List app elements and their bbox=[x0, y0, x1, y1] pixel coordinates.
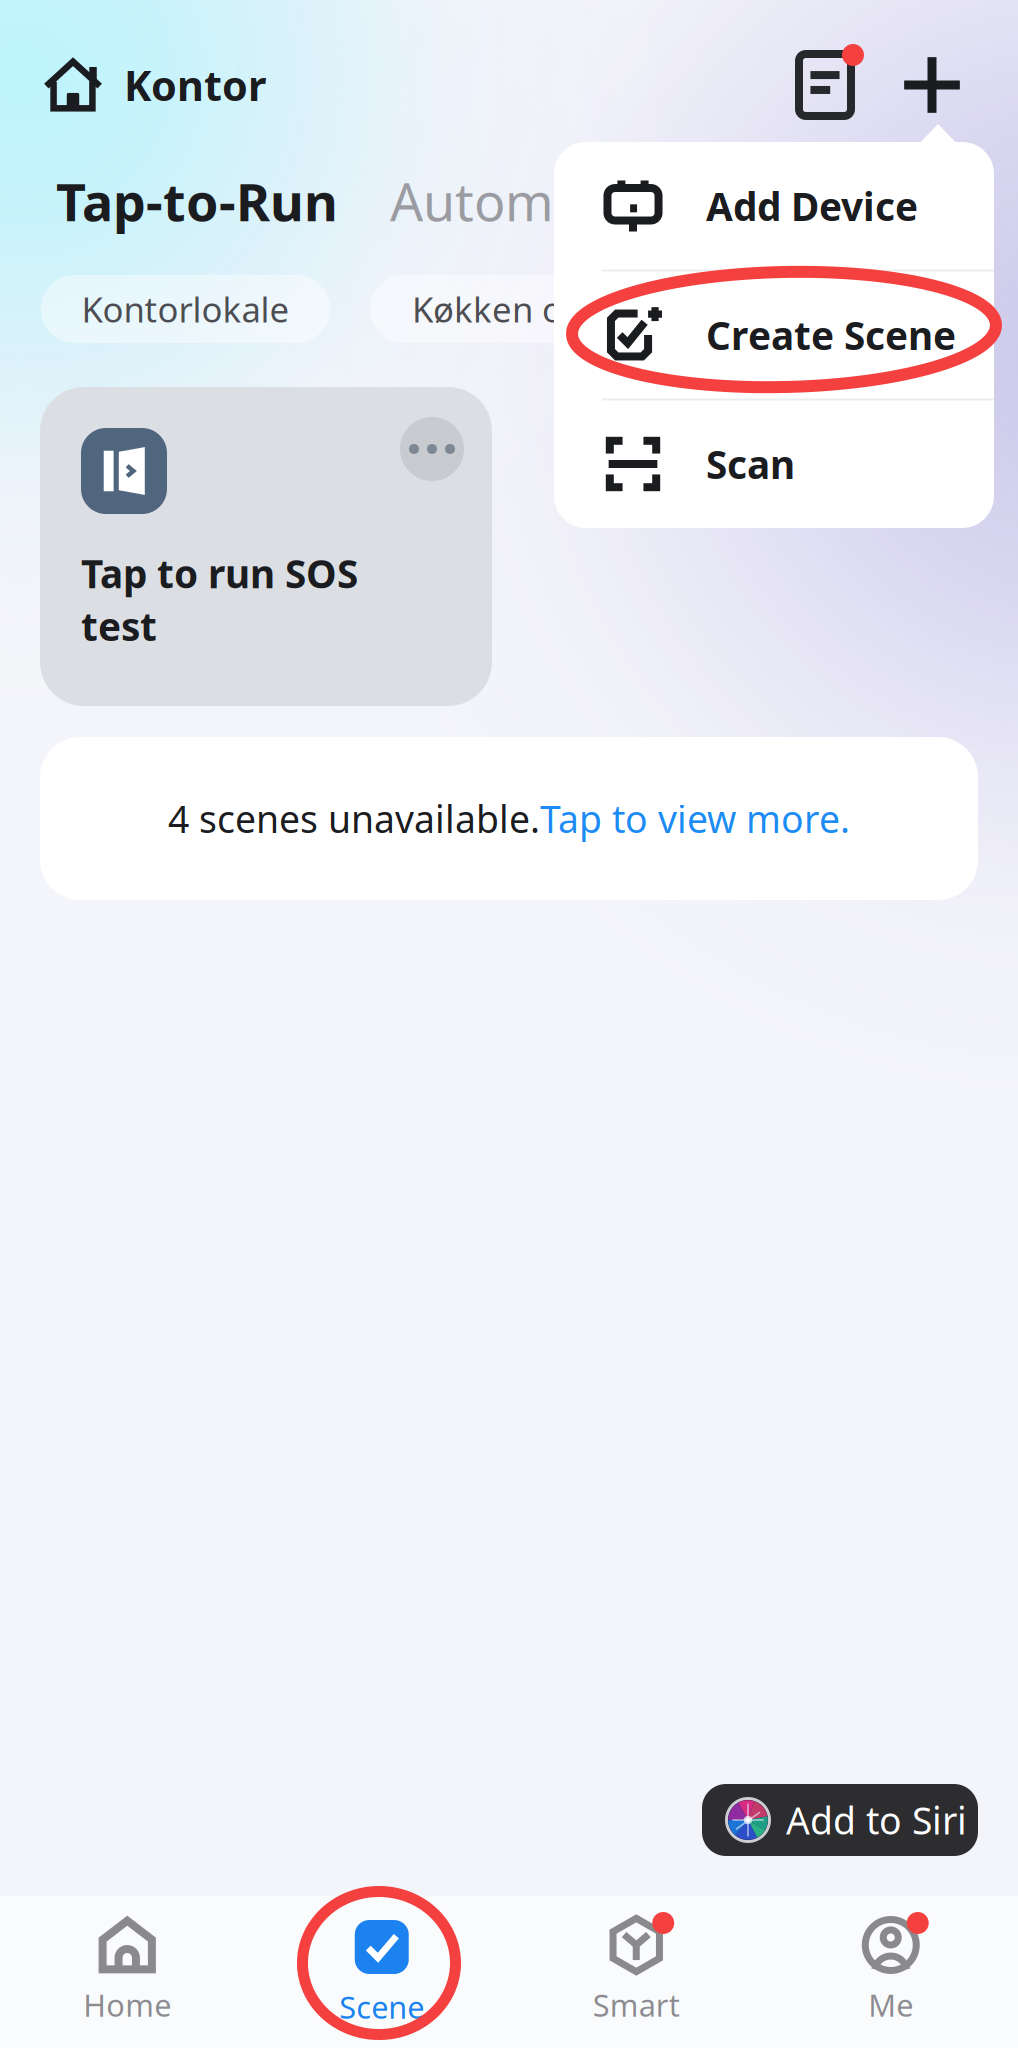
staticText: Home bbox=[83, 1984, 171, 2026]
button[interactable]: Me bbox=[763, 1896, 1018, 2048]
button[interactable]: Home bbox=[0, 1896, 254, 2048]
staticText: Kontor bbox=[124, 57, 266, 113]
button[interactable]: Scan bbox=[554, 400, 994, 527]
button[interactable]: Add to Siri bbox=[702, 1784, 978, 1856]
button[interactable]: Tap-to-Run bbox=[56, 170, 338, 232]
staticText: Tap-to-Run bbox=[56, 166, 338, 236]
button[interactable]: Køkken og alrum bbox=[370, 275, 730, 343]
staticText: 4 scenes unavailable. bbox=[168, 793, 540, 844]
staticText: Smart bbox=[593, 1984, 680, 2026]
button[interactable]: Smart bbox=[509, 1896, 763, 2048]
staticText: Scan bbox=[706, 438, 795, 490]
staticText: Scene bbox=[339, 1986, 424, 2028]
button[interactable]: Notifications bbox=[783, 45, 867, 125]
staticText: Me bbox=[868, 1984, 913, 2026]
staticText: Add to Siri bbox=[786, 1795, 967, 1845]
button[interactable]: Kontor bbox=[44, 52, 266, 118]
button[interactable]: Tap to run SOS test bbox=[40, 387, 492, 706]
button[interactable]: Automation bbox=[390, 170, 678, 232]
button[interactable]: Kontorlokale bbox=[41, 275, 330, 343]
staticText: Tap to run SOS test bbox=[81, 547, 358, 652]
staticText: Køkken og alrum bbox=[412, 285, 688, 333]
staticText: Automation bbox=[390, 166, 678, 236]
staticText: Create Scene bbox=[706, 309, 956, 361]
button[interactable]: Add device or scene bbox=[890, 45, 974, 125]
button[interactable]: Create Scene bbox=[554, 271, 994, 398]
staticText: Kontorlokale bbox=[81, 285, 289, 333]
staticText: Add Device bbox=[706, 180, 918, 232]
button[interactable]: Add Device bbox=[554, 142, 994, 269]
button[interactable]: 4 scenes unavailable. bbox=[40, 737, 978, 900]
button[interactable]: Scene bbox=[254, 1896, 509, 2048]
staticText: Tap to view more. bbox=[540, 793, 850, 844]
